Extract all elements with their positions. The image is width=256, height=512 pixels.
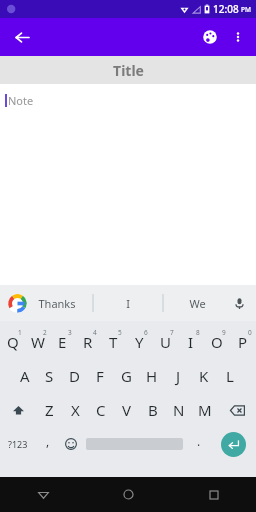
staticText: Thanks [38,296,76,311]
button[interactable]: G [113,359,139,393]
staticText: M [198,400,212,420]
staticText: J [176,366,181,386]
staticText: H [146,366,158,386]
staticText: X [71,400,80,420]
button[interactable]: Change colour [196,23,224,51]
button[interactable]: L [217,359,243,393]
button[interactable]: P [230,325,256,359]
staticText: 12:08 [213,2,239,16]
button[interactable]: O [204,325,230,359]
staticText: I [188,332,194,352]
button[interactable]: N [166,393,192,427]
staticText: 5 [118,328,122,337]
button[interactable]: E [50,325,75,359]
button[interactable]: H [139,359,165,393]
staticText: W [31,332,45,352]
staticText: V [122,400,132,420]
button[interactable]: Voice input [228,292,250,314]
button[interactable]: Back [0,477,86,512]
button[interactable]: Shift [0,393,37,427]
button[interactable]: ?123 [0,427,36,461]
staticText: 8 [196,328,200,337]
button[interactable]: F [87,359,113,393]
staticText: We [189,296,206,311]
button[interactable]: Recent apps [171,477,256,512]
staticText: R [83,332,93,352]
staticText: N [173,400,185,420]
staticText: B [148,400,158,420]
staticText: ?123 [8,438,28,450]
button[interactable]: D [62,359,87,393]
staticText: O [211,332,223,352]
staticText: Z [45,400,54,420]
staticText: Q [7,332,19,352]
staticText: PM [241,5,251,14]
staticText: S [45,366,54,386]
button[interactable]: I [178,325,204,359]
button[interactable]: V [114,393,140,427]
staticText: 1 [18,328,22,337]
staticText: 0 [248,328,252,337]
staticText: F [96,366,104,386]
staticText: D [69,366,80,386]
staticText: K [199,366,209,386]
button[interactable]: S [37,359,62,393]
button[interactable]: Google [7,293,27,313]
button[interactable]: I [99,285,157,321]
button[interactable]: Note [0,84,256,285]
button[interactable]: Y [126,325,152,359]
button[interactable]: A [12,359,37,393]
staticText: U [160,332,171,352]
staticText: . [197,433,201,449]
button[interactable]: Emoji [59,427,82,461]
staticText: E [58,332,67,352]
button[interactable]: Enter [210,427,256,461]
staticText: Y [135,332,144,352]
button[interactable]: M [192,393,218,427]
staticText: Title [113,61,144,80]
button[interactable]: R [75,325,100,359]
staticText: 4 [93,328,97,337]
button[interactable]: Z [37,393,62,427]
staticText: T [109,332,118,352]
staticText: 7 [170,328,174,337]
button[interactable]: , [36,427,59,461]
button[interactable]: X [62,393,88,427]
button[interactable]: C [88,393,114,427]
staticText: G [121,366,132,386]
staticText: 6 [144,328,148,337]
staticText: , [46,433,50,449]
staticText: 3 [68,328,72,337]
button[interactable] [82,427,187,461]
button[interactable]: U [152,325,178,359]
button[interactable]: Backspace [218,393,256,427]
staticText: C [96,400,106,420]
button[interactable]: Back [8,23,36,51]
button[interactable]: W [25,325,50,359]
button[interactable]: J [165,359,191,393]
button[interactable]: B [140,393,166,427]
staticText: 9 [222,328,226,337]
staticText: 2 [43,328,47,337]
button[interactable]: More options [224,23,252,51]
staticText: A [20,366,30,386]
button[interactable]: We [168,285,226,321]
button[interactable]: Title [0,56,256,84]
button[interactable]: Thanks [28,285,86,321]
staticText: I [126,296,130,311]
button[interactable]: Q [0,325,25,359]
button[interactable]: . [187,427,210,461]
button[interactable]: Home [86,477,171,512]
button[interactable]: T [100,325,126,359]
staticText: L [226,366,234,386]
button[interactable]: K [191,359,217,393]
staticText: Note [8,93,34,108]
staticText: P [238,332,248,352]
